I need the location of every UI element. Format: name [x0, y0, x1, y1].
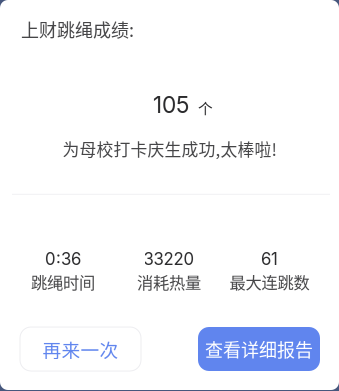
- staticText: 消耗热量: [137, 270, 201, 293]
- staticText: 61: [261, 249, 278, 269]
- staticText: 查看详细报告: [205, 336, 313, 362]
- staticText: 33220: [143, 249, 194, 269]
- staticText: 跳绳时间: [31, 270, 95, 293]
- staticText: 为母校打卡庆生成功,太棒啦!: [62, 136, 276, 161]
- staticText: 105: [153, 91, 189, 118]
- staticText: 0:36: [45, 249, 81, 269]
- staticText: 上财跳绳成绩:: [21, 16, 134, 42]
- button[interactable]: 再来一次: [20, 327, 141, 371]
- staticText: 个: [198, 97, 213, 118]
- staticText: 最大连跳数: [229, 270, 309, 293]
- button[interactable]: 查看详细报告: [198, 327, 320, 371]
- staticText: 再来一次: [42, 335, 118, 362]
